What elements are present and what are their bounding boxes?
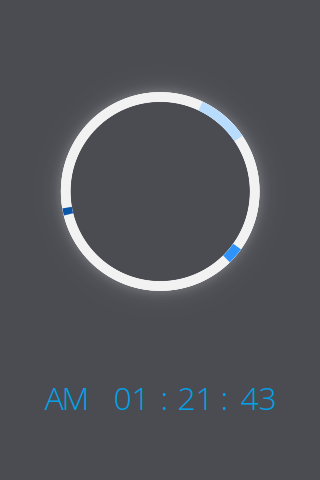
staticText: : bbox=[161, 376, 169, 419]
button[interactable]: AM bbox=[44, 376, 277, 419]
staticText: 21 bbox=[178, 376, 214, 419]
staticText: 43 bbox=[241, 376, 277, 419]
staticText: AM bbox=[44, 376, 90, 419]
staticText: : bbox=[221, 376, 229, 419]
button[interactable]: 24 hour dial bbox=[54, 85, 266, 298]
staticText: 01 bbox=[114, 376, 150, 419]
